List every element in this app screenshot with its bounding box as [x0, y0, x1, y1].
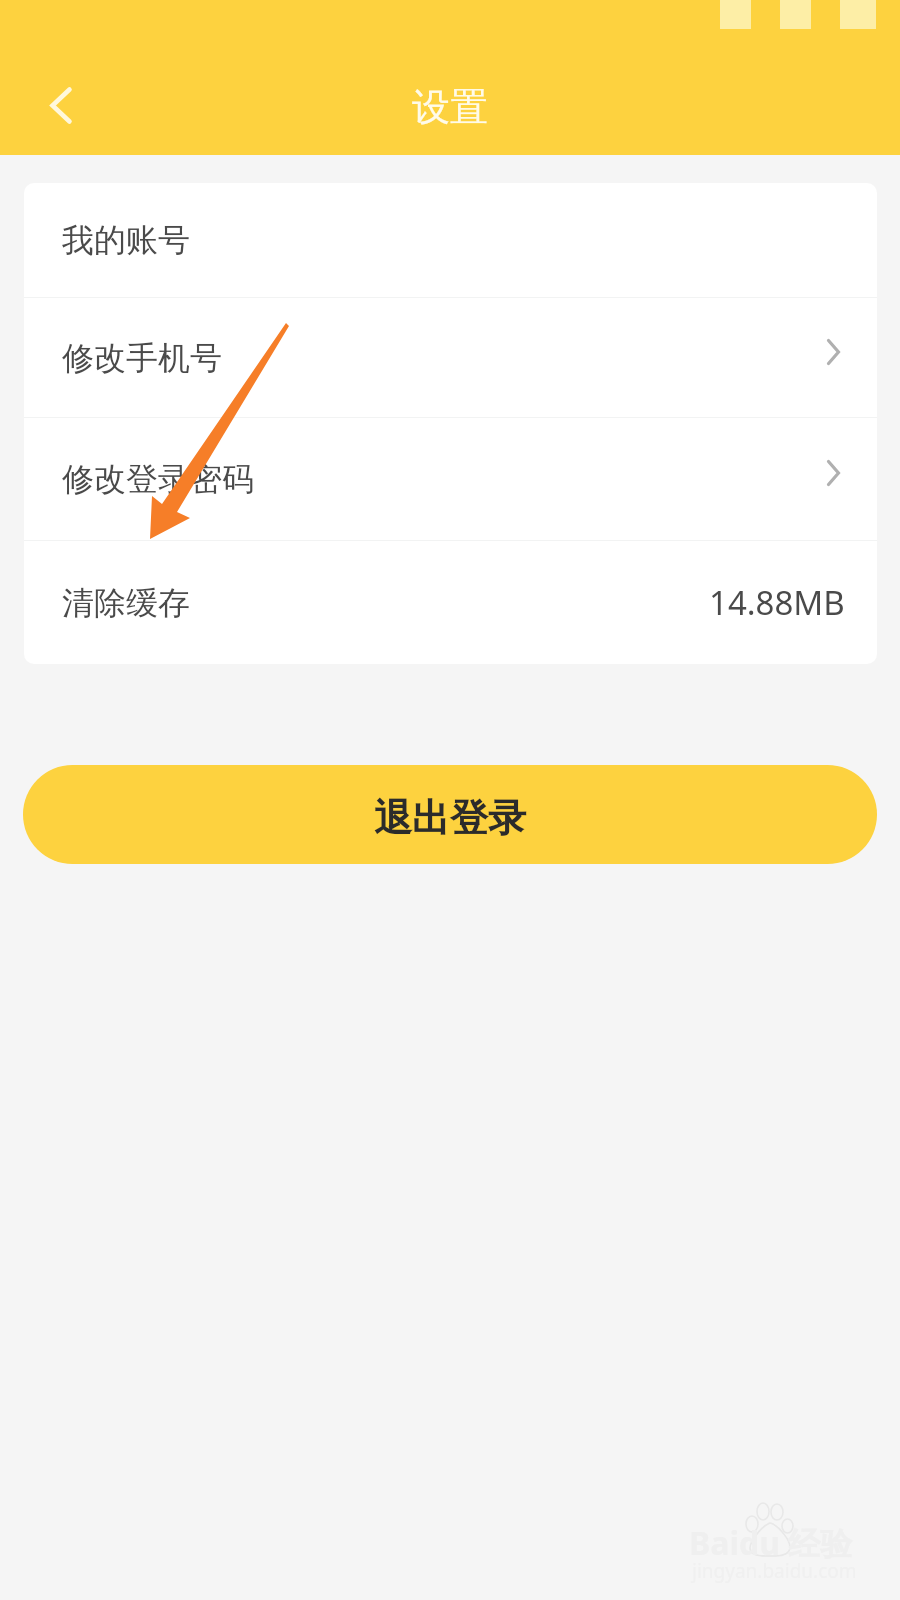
button[interactable]: Back — [30, 74, 92, 136]
staticText: Baidu 经验 — [689, 1521, 853, 1565]
button[interactable]: 退出登录 — [23, 765, 877, 864]
staticText: 修改登录密码 — [62, 459, 254, 499]
staticText: 修改手机号 — [62, 338, 222, 378]
staticText: 设置 — [412, 83, 488, 131]
button[interactable]: 我的账号 — [24, 183, 877, 297]
button[interactable]: 修改登录密码 — [24, 418, 877, 540]
staticText: 退出登录 — [374, 794, 526, 842]
staticText: 清除缓存 — [62, 583, 190, 623]
button[interactable]: 清除缓存 — [24, 541, 877, 664]
button[interactable]: 修改手机号 — [24, 298, 877, 417]
staticText: 14.88MB — [709, 580, 845, 625]
staticText: 我的账号 — [62, 220, 190, 260]
